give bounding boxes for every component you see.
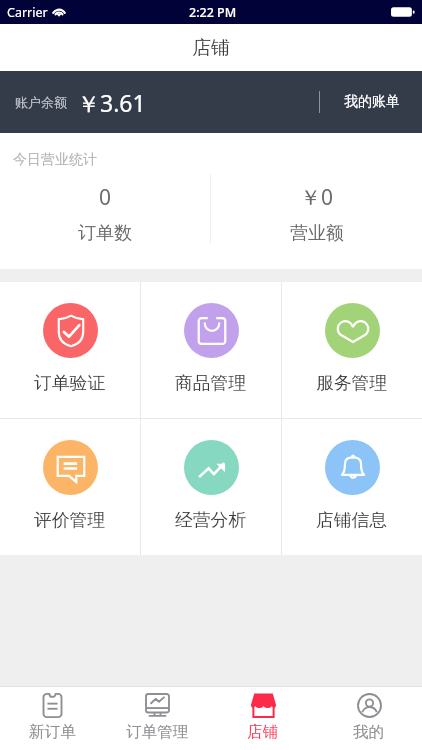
button[interactable]: 我的: [316, 687, 422, 750]
staticText: 店铺: [192, 36, 230, 60]
staticText: 商品管理: [175, 372, 247, 394]
staticText: 我的账单: [344, 93, 400, 111]
staticText: 我的: [353, 722, 385, 742]
button[interactable]: 新订单: [0, 687, 105, 750]
staticText: 0: [99, 183, 112, 212]
staticText: 营业额: [290, 222, 344, 245]
staticText: ￥3.61: [77, 87, 146, 118]
staticText: 经营分析: [175, 509, 247, 531]
staticText: 店铺信息: [316, 509, 388, 531]
staticText: 新订单: [29, 722, 76, 742]
staticText: ￥0: [300, 183, 334, 212]
button[interactable]: 订单管理: [105, 687, 210, 750]
button[interactable]: 经营分析: [141, 419, 281, 555]
staticText: 订单数: [78, 222, 132, 245]
button[interactable]: 评价管理: [0, 419, 140, 555]
button[interactable]: 账户余额: [0, 71, 422, 133]
button[interactable]: 店铺信息: [282, 419, 422, 555]
staticText: 评价管理: [34, 509, 106, 531]
staticText: 店铺: [247, 722, 279, 742]
staticText: 2:22 PM: [189, 4, 237, 21]
staticText: 订单验证: [34, 372, 106, 394]
staticText: Carrier: [7, 4, 48, 21]
button[interactable]: 服务管理: [282, 282, 422, 418]
staticText: 订单管理: [126, 722, 189, 742]
button[interactable]: 订单验证: [0, 282, 140, 418]
button[interactable]: 店铺: [210, 687, 316, 750]
staticText: 账户余额: [15, 94, 67, 110]
staticText: 服务管理: [316, 372, 388, 394]
staticText: 今日营业统计: [13, 151, 97, 169]
button[interactable]: 商品管理: [141, 282, 281, 418]
